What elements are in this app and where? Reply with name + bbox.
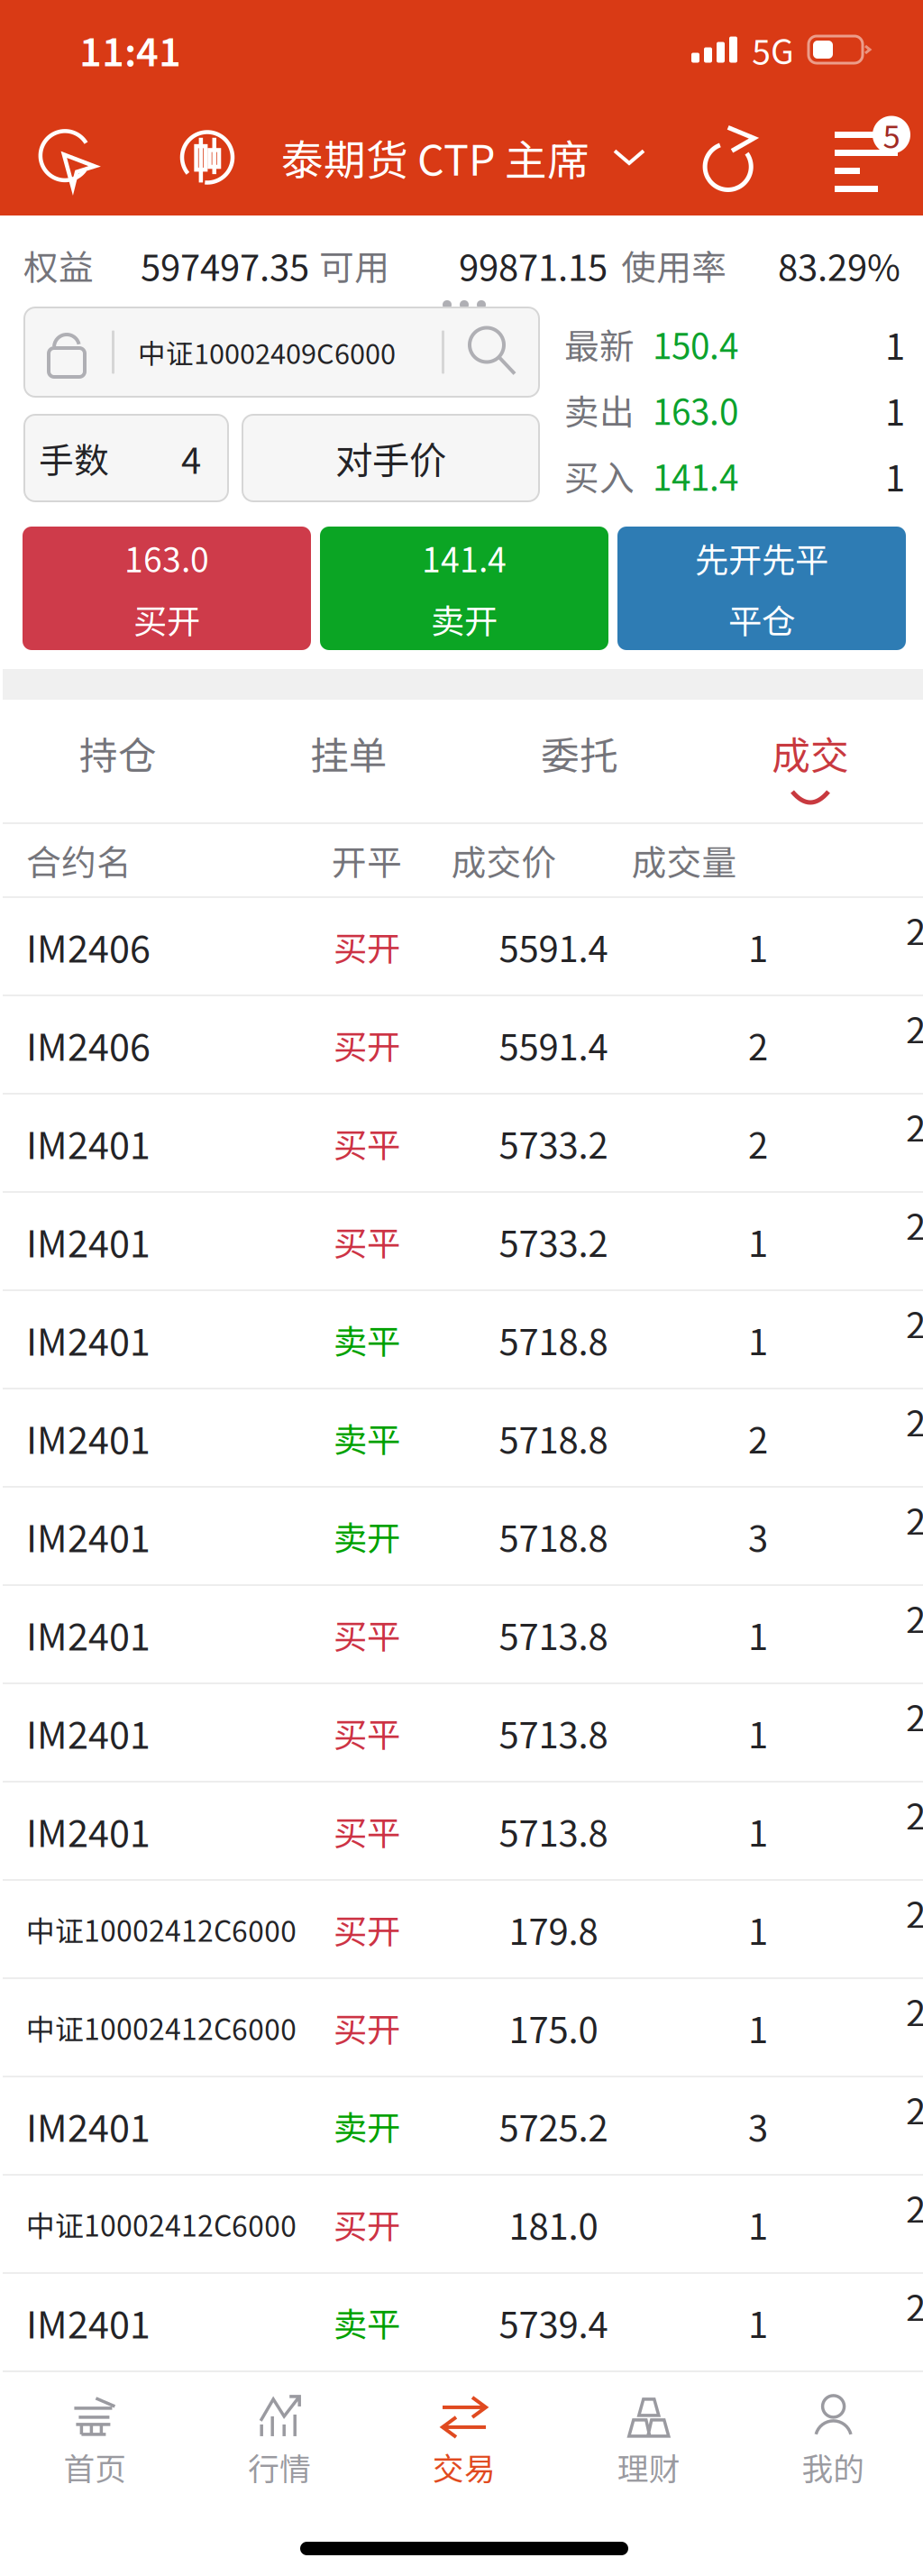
staticText: 2 xyxy=(906,1788,923,1840)
button[interactable]: IM2401 xyxy=(3,1095,923,1193)
staticText: 150.4 xyxy=(653,319,738,369)
staticText: 卖平 xyxy=(334,2298,400,2347)
staticText: 141.4 xyxy=(422,533,507,582)
button[interactable]: 理财 xyxy=(557,2381,741,2500)
button[interactable]: IM2406 xyxy=(3,996,923,1095)
staticText: 使用率 xyxy=(621,240,727,290)
staticText: IM2401 xyxy=(26,1607,151,1661)
staticText: 1 xyxy=(885,384,905,436)
button[interactable]: 挂单 xyxy=(233,700,464,822)
staticText: 1 xyxy=(748,1215,768,1267)
button[interactable]: 中证10002412C6000 xyxy=(3,1979,923,2077)
staticText: 买开 xyxy=(334,1905,400,1954)
button[interactable]: 委托 xyxy=(464,700,695,822)
button[interactable]: IM2401 xyxy=(3,1389,923,1488)
button[interactable]: 我的 xyxy=(741,2381,923,2500)
staticText: 5713.8 xyxy=(499,1706,608,1759)
staticText: IM2401 xyxy=(26,1706,151,1760)
button[interactable]: 泰期货 CTP 主席 xyxy=(281,108,645,207)
staticText: IM2401 xyxy=(26,1804,151,1858)
staticText: 平仓 xyxy=(728,595,795,643)
staticText: 1 xyxy=(748,1706,768,1759)
staticText: 买开 xyxy=(334,2003,400,2052)
button[interactable]: IM2401 xyxy=(3,1586,923,1684)
button[interactable]: 中证10002412C6000 xyxy=(3,2176,923,2274)
button[interactable]: 委托单 xyxy=(820,108,914,207)
staticText: 141.4 xyxy=(653,450,738,501)
staticText: 5718.8 xyxy=(499,1412,608,1464)
staticText: 2 xyxy=(906,1493,923,1545)
button[interactable]: 行情 xyxy=(187,2381,372,2500)
staticText: 2 xyxy=(906,1297,923,1349)
button[interactable]: IM2401 xyxy=(3,2077,923,2176)
staticText: 175.0 xyxy=(509,2001,598,2053)
button[interactable]: 141.4 xyxy=(320,527,608,650)
button[interactable]: IM2401 xyxy=(3,1783,923,1881)
staticText: 1 xyxy=(748,1608,768,1660)
staticText: IM2401 xyxy=(26,2295,151,2349)
button[interactable]: 交易 xyxy=(372,2381,557,2500)
staticText: 2 xyxy=(906,1002,923,1054)
staticText: 2 xyxy=(906,2181,923,2233)
staticText: 1 xyxy=(748,1903,768,1955)
staticText: 开平 xyxy=(332,835,402,885)
staticText: 卖开 xyxy=(334,1512,400,1560)
staticText: 我的 xyxy=(802,2444,865,2490)
staticText: 2 xyxy=(906,1886,923,1938)
staticText: 5718.8 xyxy=(499,1510,608,1562)
button[interactable]: 中证10002412C6000 xyxy=(3,1881,923,1979)
staticText: 1 xyxy=(885,318,905,370)
staticText: IM2401 xyxy=(26,2099,151,2153)
staticText: 179.8 xyxy=(509,1903,598,1955)
button[interactable]: 先开先平 xyxy=(617,527,906,650)
staticText: 委托 xyxy=(541,725,618,781)
staticText: 买入 xyxy=(564,450,635,501)
button[interactable]: 首页 xyxy=(3,2381,187,2500)
staticText: 卖出 xyxy=(564,385,635,435)
staticText: 5713.8 xyxy=(499,1608,608,1660)
staticText: 5591.4 xyxy=(499,920,608,972)
staticText: 5591.4 xyxy=(499,1018,608,1071)
staticText: 5725.2 xyxy=(499,2099,608,2152)
button[interactable]: IM2401 xyxy=(3,1488,923,1586)
button[interactable]: IM2401 xyxy=(3,1684,923,1783)
staticText: 合约名 xyxy=(26,835,132,885)
staticText: 181.0 xyxy=(509,2198,598,2250)
staticText: 2 xyxy=(906,1591,923,1644)
staticText: IM2401 xyxy=(26,1214,151,1268)
staticText: 4 xyxy=(181,432,201,484)
button[interactable]: IM2401 xyxy=(3,1291,923,1389)
staticText: IM2401 xyxy=(26,1509,151,1563)
button[interactable]: IM2401 xyxy=(3,1193,923,1291)
staticText: 2 xyxy=(906,1690,923,1742)
staticText: 1 xyxy=(748,2001,768,2053)
staticText: 买平 xyxy=(334,1118,400,1167)
staticText: 买开 xyxy=(334,922,400,971)
staticText: 2 xyxy=(906,903,923,956)
staticText: 买平 xyxy=(334,1708,400,1757)
button[interactable]: 定位 xyxy=(18,108,115,207)
staticText: 卖平 xyxy=(334,1413,400,1462)
button[interactable]: 手数 xyxy=(24,415,228,501)
button[interactable]: 成交 xyxy=(695,700,923,822)
staticText: 163.0 xyxy=(124,533,209,582)
staticText: 买开 xyxy=(334,1020,400,1069)
staticText: IM2406 xyxy=(26,1018,151,1072)
button[interactable]: IM2401 xyxy=(3,2274,923,2372)
staticText: 成交价 xyxy=(451,835,557,885)
staticText: 权益 xyxy=(23,240,94,290)
button[interactable]: 持仓 xyxy=(3,700,233,822)
button[interactable]: 对手价 xyxy=(242,415,539,501)
staticText: 1 xyxy=(748,1313,768,1365)
button[interactable]: IM2406 xyxy=(3,898,923,996)
staticText: 买开 xyxy=(133,595,200,643)
staticText: 中证10002412C6000 xyxy=(26,1908,297,1950)
button[interactable]: 刷新 xyxy=(653,108,811,207)
staticText: 1 xyxy=(885,449,905,502)
button[interactable]: 账户 xyxy=(166,108,249,207)
staticText: 1 xyxy=(748,2296,768,2348)
staticText: 5739.4 xyxy=(499,2296,608,2348)
button[interactable]: 中证10002409C6000 xyxy=(24,307,539,397)
button[interactable]: 163.0 xyxy=(23,527,311,650)
staticText: 11:41 xyxy=(79,22,181,77)
